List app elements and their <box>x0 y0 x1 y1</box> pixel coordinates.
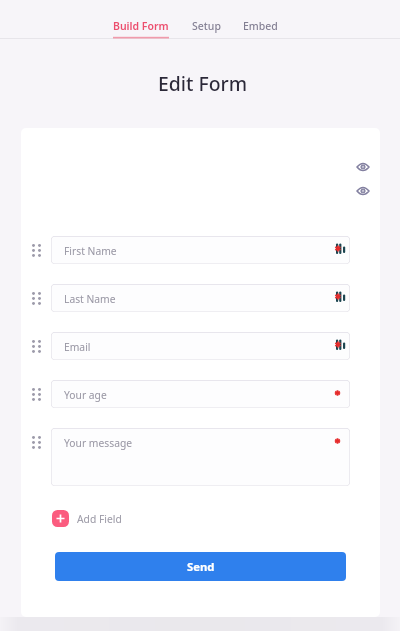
button[interactable]: Reorder First Name <box>28 240 45 261</box>
staticText: Last Name <box>64 292 116 306</box>
staticText: Send <box>187 559 215 574</box>
button[interactable]: Build Form <box>113 0 169 39</box>
button[interactable]: Field settings <box>330 336 350 356</box>
staticText: Email <box>64 340 91 354</box>
button[interactable]: Your message <box>51 428 350 486</box>
button[interactable]: Field settings <box>330 288 350 308</box>
staticText: Build Form <box>113 19 169 33</box>
button[interactable]: Add Field <box>52 510 126 527</box>
staticText: Edit Form <box>158 70 248 96</box>
button[interactable]: Field settings <box>330 240 350 260</box>
button[interactable]: Required field <box>330 432 350 452</box>
staticText: Embed <box>243 19 278 33</box>
button[interactable]: First Name <box>51 236 350 264</box>
button[interactable]: Your age <box>51 380 350 408</box>
button[interactable]: Preview field <box>355 159 371 175</box>
button[interactable]: Embed <box>243 0 278 39</box>
button[interactable]: Reorder Last Name <box>28 288 45 309</box>
staticText: First Name <box>64 244 117 258</box>
staticText: Add Field <box>77 512 122 526</box>
button[interactable]: Email <box>51 332 350 360</box>
button[interactable]: Setup <box>192 0 221 39</box>
staticText: Setup <box>192 19 221 33</box>
button[interactable]: Required field <box>330 384 350 404</box>
button[interactable]: Reorder Email <box>28 336 45 357</box>
button[interactable]: Preview field <box>355 183 371 199</box>
staticText: Your message <box>64 436 133 450</box>
button[interactable]: Reorder Your age <box>28 384 45 405</box>
button[interactable]: Reorder Your message <box>28 432 45 453</box>
button[interactable]: Last Name <box>51 284 350 312</box>
button[interactable]: Send <box>55 552 346 581</box>
staticText: Your age <box>64 388 107 402</box>
